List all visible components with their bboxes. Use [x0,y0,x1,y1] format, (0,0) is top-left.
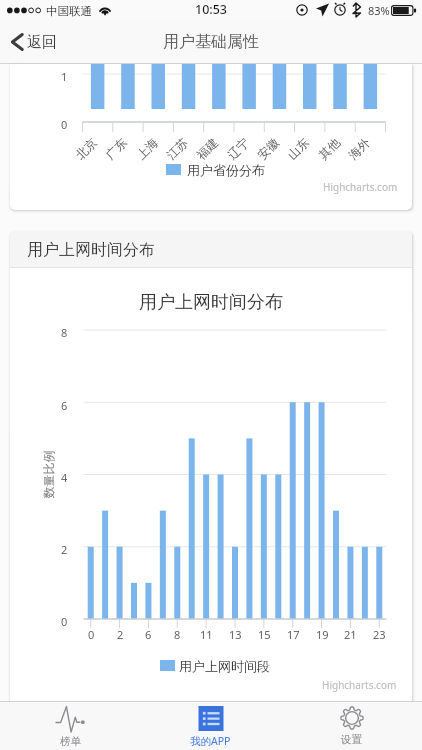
staticText: 海外 [345,135,373,162]
button[interactable]: My apps [140,702,281,750]
staticText: 2 [61,542,68,557]
staticText: 广东 [102,135,130,162]
staticText: 4 [61,470,68,485]
staticText: 上海 [133,135,161,162]
button[interactable]: Rankings [0,702,140,750]
staticText: 11 [200,627,213,642]
staticText: 北京 [72,135,100,162]
staticText: 江苏 [163,135,191,162]
staticText: 其他 [315,135,343,162]
staticText: 用户基础属性 [163,32,259,52]
staticText: Highcharts.com [323,180,398,194]
staticText: 8 [61,325,68,340]
staticText: 用户上网时间段 [179,658,270,674]
button[interactable]: 返回 [9,20,422,64]
staticText: 用户上网时间分布 [27,240,155,260]
staticText: 13 [229,627,242,642]
staticText: 17 [287,627,300,642]
staticText: 安徽 [254,135,282,162]
staticText: 19 [316,627,329,642]
staticText: 6 [61,398,68,413]
staticText: 0 [61,614,68,629]
staticText: 21 [344,627,357,642]
staticText: 山东 [284,135,312,162]
button[interactable]: Settings [281,702,422,750]
staticText: 数量比例 [40,450,55,498]
staticText: 返回 [27,33,57,52]
staticText: 10:53 [195,1,228,18]
staticText: 中国联通 [46,4,92,18]
staticText: 1 [61,69,68,84]
staticText: 83% [368,3,390,18]
staticText: 0 [88,627,95,642]
staticText: 2 [117,627,124,642]
staticText: 福建 [193,135,221,162]
staticText: 辽宁 [224,135,252,162]
staticText: 6 [145,627,152,642]
staticText: 设置 [341,733,362,746]
staticText: 榜单 [60,735,81,748]
staticText: 我的APP [190,734,231,748]
staticText: 0 [61,117,68,132]
staticText: 23 [373,627,386,642]
staticText: Highcharts.com [322,678,397,692]
staticText: 用户省份分布 [187,162,265,178]
staticText: 用户上网时间分布 [139,291,283,314]
staticText: 8 [174,627,181,642]
staticText: 15 [258,627,271,642]
